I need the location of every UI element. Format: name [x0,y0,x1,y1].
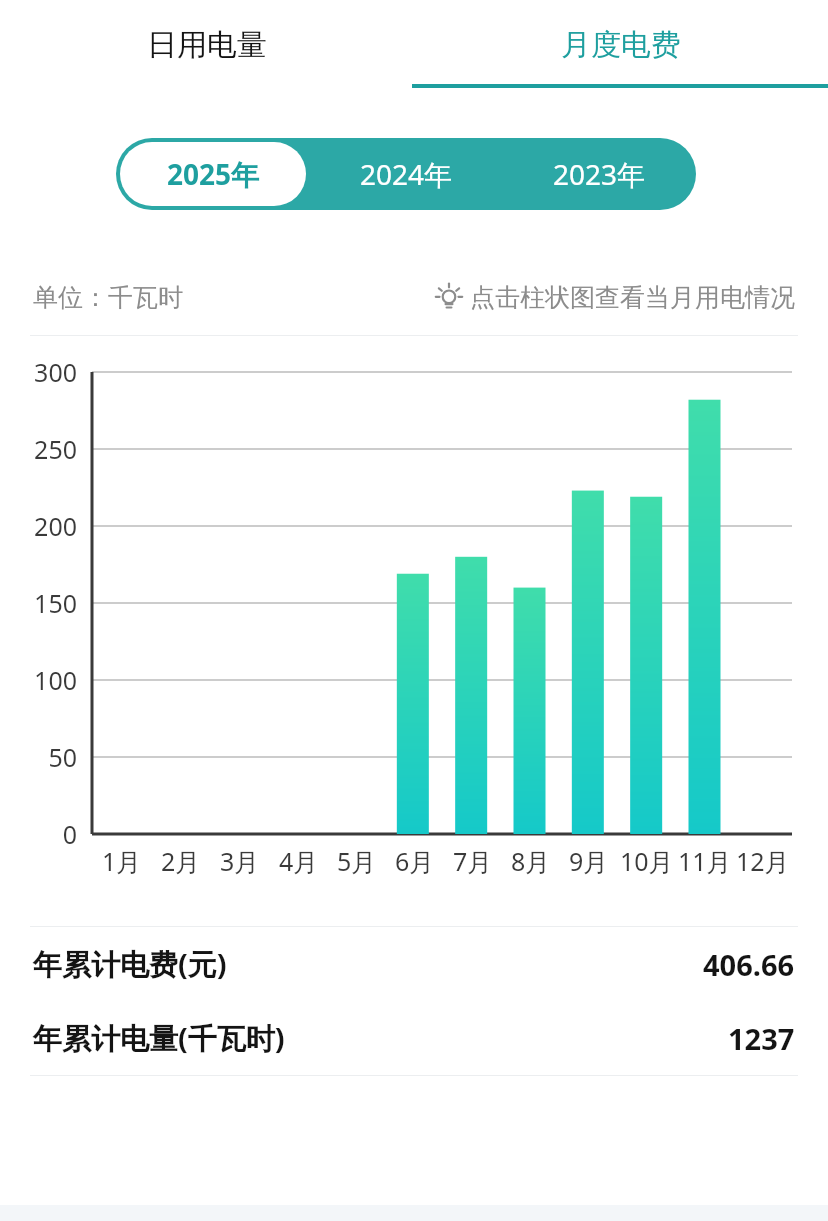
other: 提示 [434,283,464,313]
staticText: 6月 [395,844,435,878]
button[interactable]: 10月 [618,844,676,878]
staticText: 年累计电量(千瓦时) [33,1018,285,1058]
staticText: 150 [34,586,77,620]
button[interactable]: 1月 [92,844,151,878]
button[interactable]: 2024年 [314,142,499,206]
button[interactable]: 6月 [386,844,444,878]
staticText: 7月 [453,844,493,878]
staticText: 2023年 [553,155,646,193]
button[interactable]: 日用电量 [0,0,414,90]
staticText: 200 [34,509,77,543]
button[interactable]: 月度电费 [414,0,828,90]
staticText: 0 [62,817,77,851]
button[interactable]: 2月 [151,844,210,878]
button[interactable]: 2025年 [120,142,306,206]
staticText: 5月 [337,844,377,878]
staticText: 年累计电费(元) [33,944,227,984]
button[interactable]: 7月 [444,844,502,878]
button[interactable]: 12月 [734,844,792,878]
staticText: 单位：千瓦时 [33,282,183,313]
staticText: 300 [34,355,77,389]
staticText: 250 [34,432,77,466]
staticText: 点击柱状图查看当月用电情况 [470,282,795,313]
button[interactable]: 年累计电量(千瓦时) [0,1001,828,1075]
button[interactable]: 2023年 [507,142,692,206]
staticText: 4月 [279,844,319,878]
staticText: 3月 [220,844,260,878]
staticText: 1月 [102,844,142,878]
staticText: 406.66 [703,945,795,984]
staticText: 月度电费 [561,26,681,64]
staticText: 11月 [678,844,732,878]
button[interactable]: 4月 [269,844,328,878]
staticText: 9月 [569,844,609,878]
staticText: 8月 [511,844,551,878]
staticText: 2024年 [360,155,453,193]
button[interactable]: 年累计电费(元) [0,927,828,1001]
staticText: 10月 [620,844,674,878]
staticText: 日用电量 [147,26,267,64]
staticText: 100 [34,663,77,697]
staticText: 12月 [736,844,790,878]
button[interactable]: 提示 [434,282,795,313]
staticText: 2月 [161,844,201,878]
staticText: 1237 [728,1019,795,1058]
staticText: 50 [48,740,77,774]
button[interactable]: 5月 [328,844,386,878]
button[interactable]: 3月 [210,844,269,878]
button[interactable]: 8月 [502,844,560,878]
button[interactable]: 11月 [676,844,734,878]
staticText: 2025年 [167,155,260,193]
button[interactable]: 9月 [560,844,618,878]
